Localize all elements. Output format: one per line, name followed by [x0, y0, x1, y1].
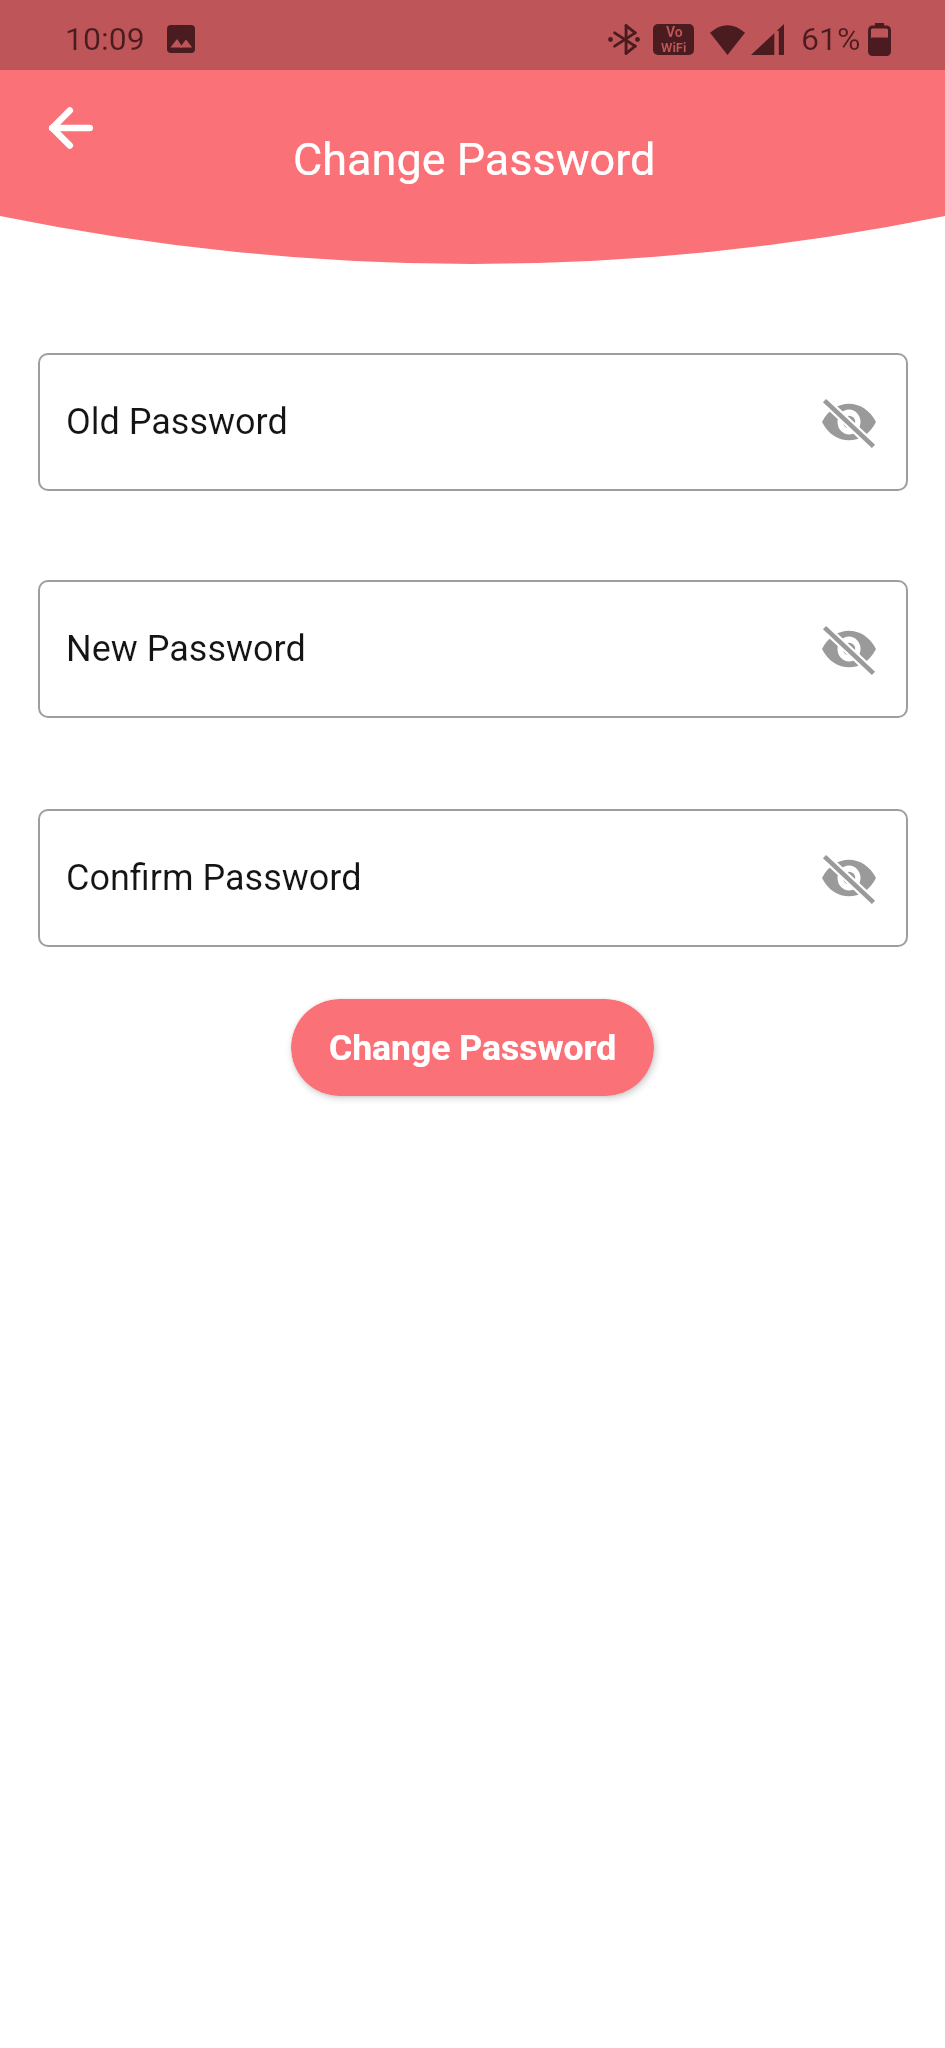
button[interactable]: Change Password — [291, 999, 654, 1096]
staticText: 10:09 — [65, 20, 145, 58]
staticText: Change Password — [293, 133, 656, 186]
staticText: 61% — [801, 20, 861, 58]
staticText: Vo — [666, 24, 683, 40]
button[interactable]: Old Password — [38, 353, 908, 491]
button[interactable]: New Password — [38, 580, 908, 718]
staticText: New Password — [66, 628, 306, 670]
button[interactable]: Toggle password visibility — [818, 618, 880, 680]
button[interactable]: Back — [31, 88, 111, 168]
staticText: Old Password — [66, 401, 288, 443]
button[interactable]: Toggle password visibility — [818, 847, 880, 909]
staticText: Confirm Password — [66, 857, 362, 899]
staticText: WiFi — [661, 40, 687, 55]
button[interactable]: Toggle password visibility — [818, 391, 880, 453]
button[interactable]: Confirm Password — [38, 809, 908, 947]
staticText: Change Password — [329, 1027, 617, 1069]
